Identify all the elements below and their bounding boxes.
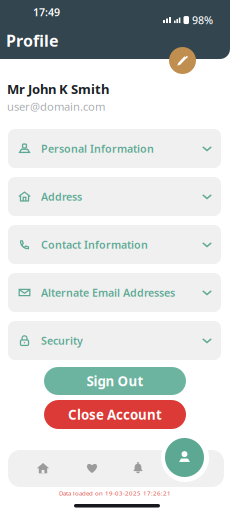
button[interactable]: Personal Information <box>8 129 221 168</box>
button[interactable]: Profile <box>165 438 204 477</box>
staticText: Mr John K Smith <box>7 80 109 98</box>
staticText: 17:49 <box>33 5 60 19</box>
staticText: 98% <box>192 13 213 27</box>
button[interactable]: Home <box>28 453 58 483</box>
button[interactable]: Notifications <box>123 453 153 483</box>
button[interactable]: Alternate Email Addresses <box>8 273 221 312</box>
button[interactable]: Security <box>8 321 221 360</box>
button[interactable]: Sign Out <box>44 367 186 395</box>
staticText: Data loaded on 19-03-2025 17:26:21 <box>59 489 171 497</box>
button[interactable]: Close Account <box>44 400 186 429</box>
staticText: Profile <box>6 30 59 51</box>
staticText: Sign Out <box>86 372 143 390</box>
button[interactable]: Contact Information <box>8 225 221 264</box>
button[interactable]: Edit profile <box>169 47 196 74</box>
button[interactable]: Favorites <box>77 453 107 483</box>
staticText: Address <box>41 189 82 204</box>
staticText: Personal Information <box>41 141 154 156</box>
button[interactable]: Address <box>8 177 221 216</box>
staticText: user@domain.com <box>7 99 105 114</box>
staticText: Contact Information <box>41 237 148 252</box>
staticText: Security <box>41 333 83 348</box>
staticText: Alternate Email Addresses <box>41 285 175 300</box>
staticText: Close Account <box>68 406 162 423</box>
